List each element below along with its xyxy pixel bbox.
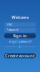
button[interactable]: Password [0, 28, 40, 32]
staticText: Sign in [13, 33, 27, 38]
staticText: Email [6, 23, 12, 26]
staticText: or [18, 45, 21, 48]
staticText: Password [6, 28, 18, 32]
staticText: Welcome [11, 14, 28, 20]
button[interactable]: Email [0, 22, 40, 27]
button[interactable]: Forgot password? [8, 40, 31, 43]
staticText: Forgot password? [8, 40, 31, 43]
staticText: Create account [5, 53, 35, 58]
button[interactable]: Create account [0, 53, 40, 58]
button[interactable]: Sign in [0, 33, 40, 38]
